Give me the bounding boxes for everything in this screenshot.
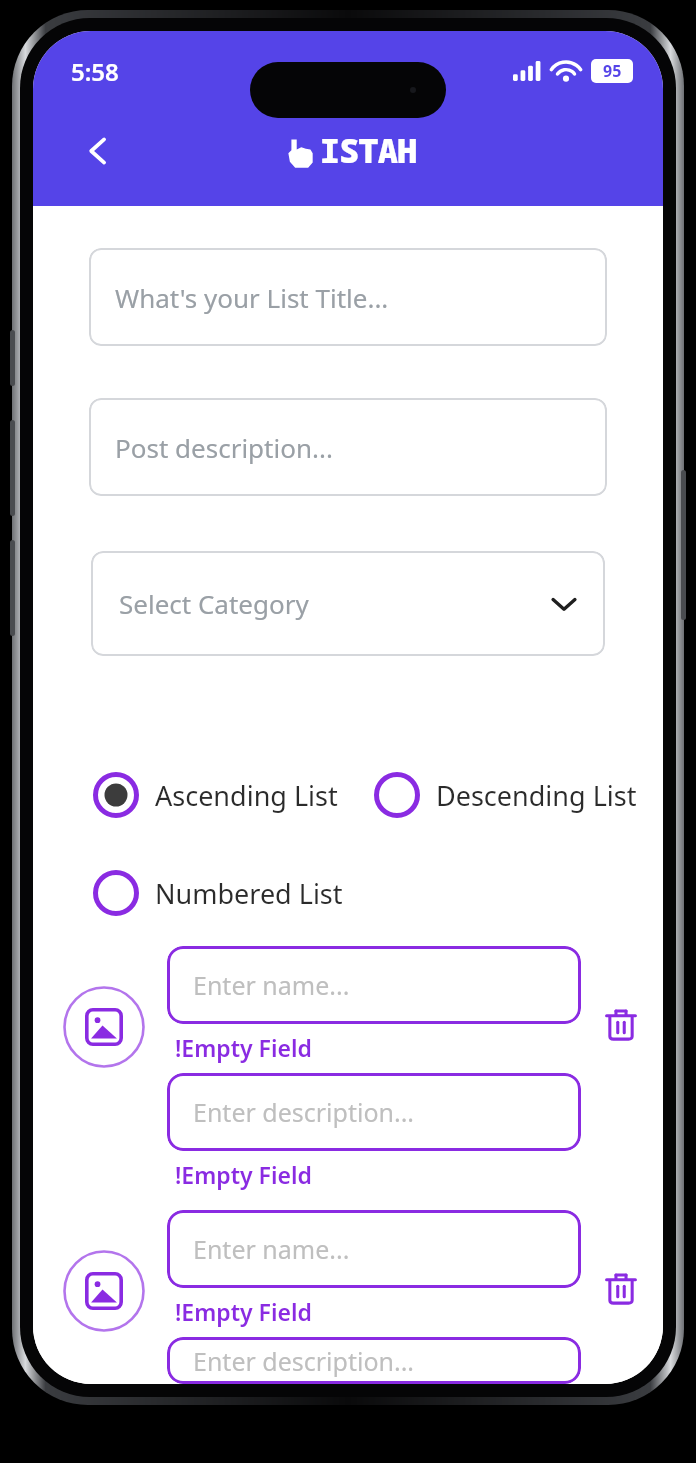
staticText: Enter description... bbox=[193, 1344, 415, 1378]
staticText: What's your List Title... bbox=[115, 280, 389, 315]
button[interactable]: Enter name... bbox=[167, 1210, 581, 1288]
button[interactable]: Enter description... bbox=[167, 1337, 581, 1384]
staticText: Ascending List bbox=[155, 777, 338, 814]
button[interactable]: Enter description... bbox=[167, 1073, 581, 1151]
staticText: !Empty Field bbox=[175, 1159, 312, 1190]
button[interactable]: Back bbox=[71, 124, 125, 178]
staticText: Select Category bbox=[119, 586, 309, 621]
button[interactable]: Pick image bbox=[63, 986, 145, 1068]
staticText: Numbered List bbox=[155, 875, 343, 912]
staticText: !Empty Field bbox=[175, 1296, 312, 1327]
staticText: Enter name... bbox=[193, 968, 350, 1002]
button[interactable]: Enter name... bbox=[167, 946, 581, 1024]
button[interactable]: Ascending List bbox=[93, 768, 338, 822]
staticText: Enter description... bbox=[193, 1095, 415, 1129]
button[interactable]: Delete bbox=[595, 1262, 647, 1314]
button[interactable]: Delete bbox=[595, 998, 647, 1050]
button[interactable]: Pick image bbox=[63, 1250, 145, 1332]
staticText: 5:58 bbox=[71, 55, 119, 88]
staticText: !Empty Field bbox=[175, 1032, 312, 1063]
button[interactable]: Numbered List bbox=[93, 866, 343, 920]
staticText: Enter name... bbox=[193, 1232, 350, 1266]
button[interactable]: What's your List Title... bbox=[89, 248, 607, 346]
staticText: Descending List bbox=[436, 777, 637, 814]
staticText: ISTAH bbox=[320, 128, 417, 173]
button[interactable]: Post description... bbox=[89, 398, 607, 496]
button[interactable]: Select Category bbox=[91, 551, 605, 656]
button[interactable]: Descending List bbox=[374, 768, 637, 822]
staticText: 95 bbox=[603, 60, 622, 82]
staticText: Post description... bbox=[115, 430, 333, 465]
